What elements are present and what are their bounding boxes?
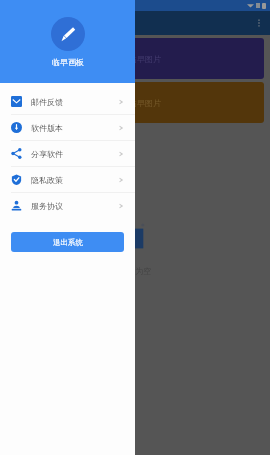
staticText: 临早图片: [129, 98, 161, 108]
button[interactable]: 隐私政策: [0, 167, 135, 192]
staticText: 临早画板: [52, 57, 84, 67]
staticText: 退出系统: [53, 238, 83, 247]
staticText: 内容为空: [119, 266, 151, 276]
staticText: 服务协议: [31, 201, 63, 211]
staticText: 邮件反馈: [31, 97, 63, 107]
staticText: 软件版本: [31, 123, 63, 133]
button[interactable]: 临早图片: [6, 82, 264, 123]
button[interactable]: 退出系统: [11, 232, 124, 252]
button[interactable]: 软件版本: [0, 115, 135, 140]
button[interactable]: 服务协议: [0, 193, 135, 218]
button[interactable]: 分享软件: [0, 141, 135, 166]
staticText: 隐私政策: [31, 175, 63, 185]
button[interactable]: 邮件反馈: [0, 89, 135, 114]
staticText: 临早图片: [129, 54, 161, 64]
staticText: 分享软件: [31, 149, 63, 159]
button[interactable]: 临早图片: [6, 38, 264, 79]
